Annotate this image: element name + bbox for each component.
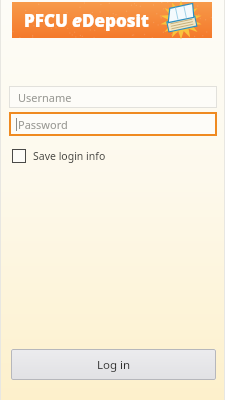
staticText: Deposit <box>82 9 149 32</box>
staticText: Password <box>18 117 68 132</box>
staticText: Username <box>18 90 72 105</box>
button[interactable]: Save login info <box>11 146 107 166</box>
button[interactable]: Username <box>9 86 217 108</box>
button[interactable]: Password <box>9 112 217 136</box>
staticText: PFCU <box>24 9 68 32</box>
button[interactable]: Log in <box>11 349 216 380</box>
staticText: e <box>72 9 82 32</box>
staticText: Log in <box>97 357 131 373</box>
staticText: Save login info <box>33 149 106 163</box>
